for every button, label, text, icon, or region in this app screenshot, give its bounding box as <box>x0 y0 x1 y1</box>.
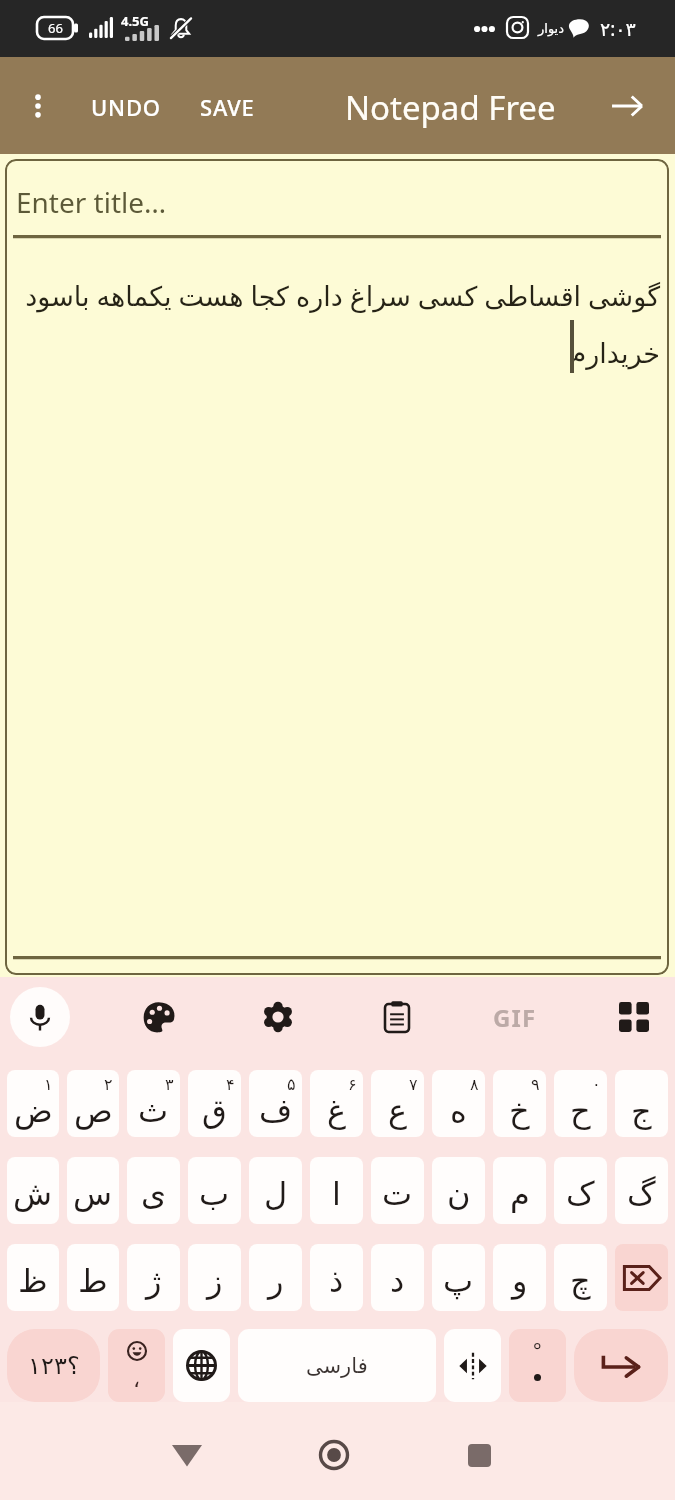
staticText: ع <box>388 1092 408 1129</box>
staticText: ف <box>259 1092 293 1129</box>
staticText: ص <box>74 1092 113 1129</box>
staticText: و <box>512 1262 528 1299</box>
staticText: ۱ <box>28 1352 41 1380</box>
button[interactable]: Settings <box>249 988 307 1046</box>
button[interactable]: Forward <box>600 79 654 133</box>
staticText: ن <box>447 1175 471 1212</box>
button[interactable]: فارسی <box>238 1329 436 1402</box>
staticText: 4.5G <box>121 12 149 30</box>
staticText: س <box>73 1175 113 1212</box>
button[interactable]: ش <box>7 1157 59 1224</box>
button[interactable]: ° <box>509 1329 566 1402</box>
staticText: فارسی <box>306 1354 368 1378</box>
staticText: گوشی اقساطی کسی سراغ داره کجا هست یکماهه… <box>23 277 660 369</box>
staticText: ذ <box>329 1262 344 1299</box>
staticText: ه <box>450 1092 467 1129</box>
staticText: ث <box>138 1092 169 1129</box>
staticText: خ <box>509 1092 530 1129</box>
button[interactable]: ق <box>188 1070 241 1137</box>
button[interactable]: Back <box>157 1425 217 1485</box>
button[interactable]: UNDO <box>77 79 175 133</box>
staticText: ظ <box>18 1262 48 1299</box>
staticText: Enter title… <box>16 183 167 221</box>
button[interactable]: ح <box>554 1070 607 1137</box>
staticText: ، <box>133 1367 141 1393</box>
staticText: ش <box>13 1175 53 1212</box>
button[interactable]: Home <box>304 1425 364 1485</box>
staticText: ق <box>202 1092 227 1129</box>
button[interactable]: ظ <box>7 1244 59 1311</box>
button[interactable]: ع <box>371 1070 424 1137</box>
button[interactable]: ۱ <box>7 1329 100 1402</box>
staticText: GIF <box>493 1001 537 1034</box>
staticText: SAVE <box>200 92 255 122</box>
button[interactable]: چ <box>554 1244 607 1311</box>
button[interactable]: ت <box>371 1157 424 1224</box>
button[interactable]: گ <box>615 1157 668 1224</box>
button[interactable]: پ <box>432 1244 485 1311</box>
button[interactable]: ژ <box>127 1244 180 1311</box>
button[interactable]: Emoji <box>108 1329 165 1402</box>
button[interactable]: GIF <box>486 991 544 1049</box>
staticText: ۸ <box>470 1075 479 1094</box>
staticText: گ <box>627 1175 656 1212</box>
button[interactable]: Move cursor <box>444 1329 501 1402</box>
staticText: م <box>510 1175 530 1212</box>
button[interactable]: ب <box>188 1157 241 1224</box>
staticText: ل <box>264 1175 288 1212</box>
button[interactable]: ج <box>615 1070 668 1137</box>
staticText: 66 <box>48 19 63 37</box>
button[interactable]: Recents <box>449 1425 509 1485</box>
button[interactable]: ط <box>67 1244 119 1311</box>
button[interactable]: More options <box>14 82 62 130</box>
button[interactable]: ص <box>67 1070 119 1137</box>
button[interactable]: Voice input <box>10 987 70 1047</box>
button[interactable]: ز <box>188 1244 241 1311</box>
staticText: ۲:۰۳ <box>600 16 636 42</box>
button[interactable]: ف <box>249 1070 302 1137</box>
button[interactable]: ث <box>127 1070 180 1137</box>
button[interactable]: خ <box>493 1070 546 1137</box>
staticText: ض <box>14 1092 53 1129</box>
staticText: ۹ <box>531 1075 540 1094</box>
staticText: ۲ <box>41 1352 54 1380</box>
button[interactable]: Enter <box>574 1329 668 1402</box>
button[interactable]: ا <box>310 1157 363 1224</box>
button[interactable]: Backspace <box>615 1244 668 1311</box>
button[interactable]: غ <box>310 1070 363 1137</box>
button[interactable]: م <box>493 1157 546 1224</box>
staticText: ر <box>268 1262 284 1299</box>
button[interactable]: و <box>493 1244 546 1311</box>
button[interactable]: د <box>371 1244 424 1311</box>
button[interactable]: س <box>67 1157 119 1224</box>
staticText: ۳ <box>54 1352 67 1380</box>
button[interactable]: SAVE <box>186 79 269 133</box>
staticText: ح <box>570 1092 591 1129</box>
button[interactable]: ر <box>249 1244 302 1311</box>
button[interactable]: Clipboard <box>368 988 426 1046</box>
button[interactable]: ض <box>7 1070 59 1137</box>
button[interactable]: More keyboards <box>605 988 663 1046</box>
staticText: ا <box>332 1175 341 1212</box>
button[interactable]: ل <box>249 1157 302 1224</box>
button[interactable]: ذ <box>310 1244 363 1311</box>
button[interactable]: Themes <box>130 988 188 1046</box>
staticText: ک <box>566 1175 595 1212</box>
staticText: ژ <box>146 1262 162 1299</box>
staticText: غ <box>327 1092 347 1129</box>
staticText: Notepad Free <box>345 85 556 130</box>
staticText: ت <box>382 1175 413 1212</box>
staticText: ۶ <box>348 1075 357 1094</box>
button[interactable]: ه <box>432 1070 485 1137</box>
button[interactable]: ن <box>432 1157 485 1224</box>
staticText: ۱ <box>44 1075 53 1094</box>
button[interactable]: Change language <box>173 1329 230 1402</box>
staticText: ؟ <box>67 1352 80 1380</box>
button[interactable]: ک <box>554 1157 607 1224</box>
staticText: ° <box>533 1337 542 1364</box>
staticText: UNDO <box>91 92 161 122</box>
button[interactable]: ی <box>127 1157 180 1224</box>
staticText: ۲ <box>104 1075 113 1094</box>
staticText: ۷ <box>409 1075 418 1094</box>
staticText: د <box>390 1262 405 1299</box>
